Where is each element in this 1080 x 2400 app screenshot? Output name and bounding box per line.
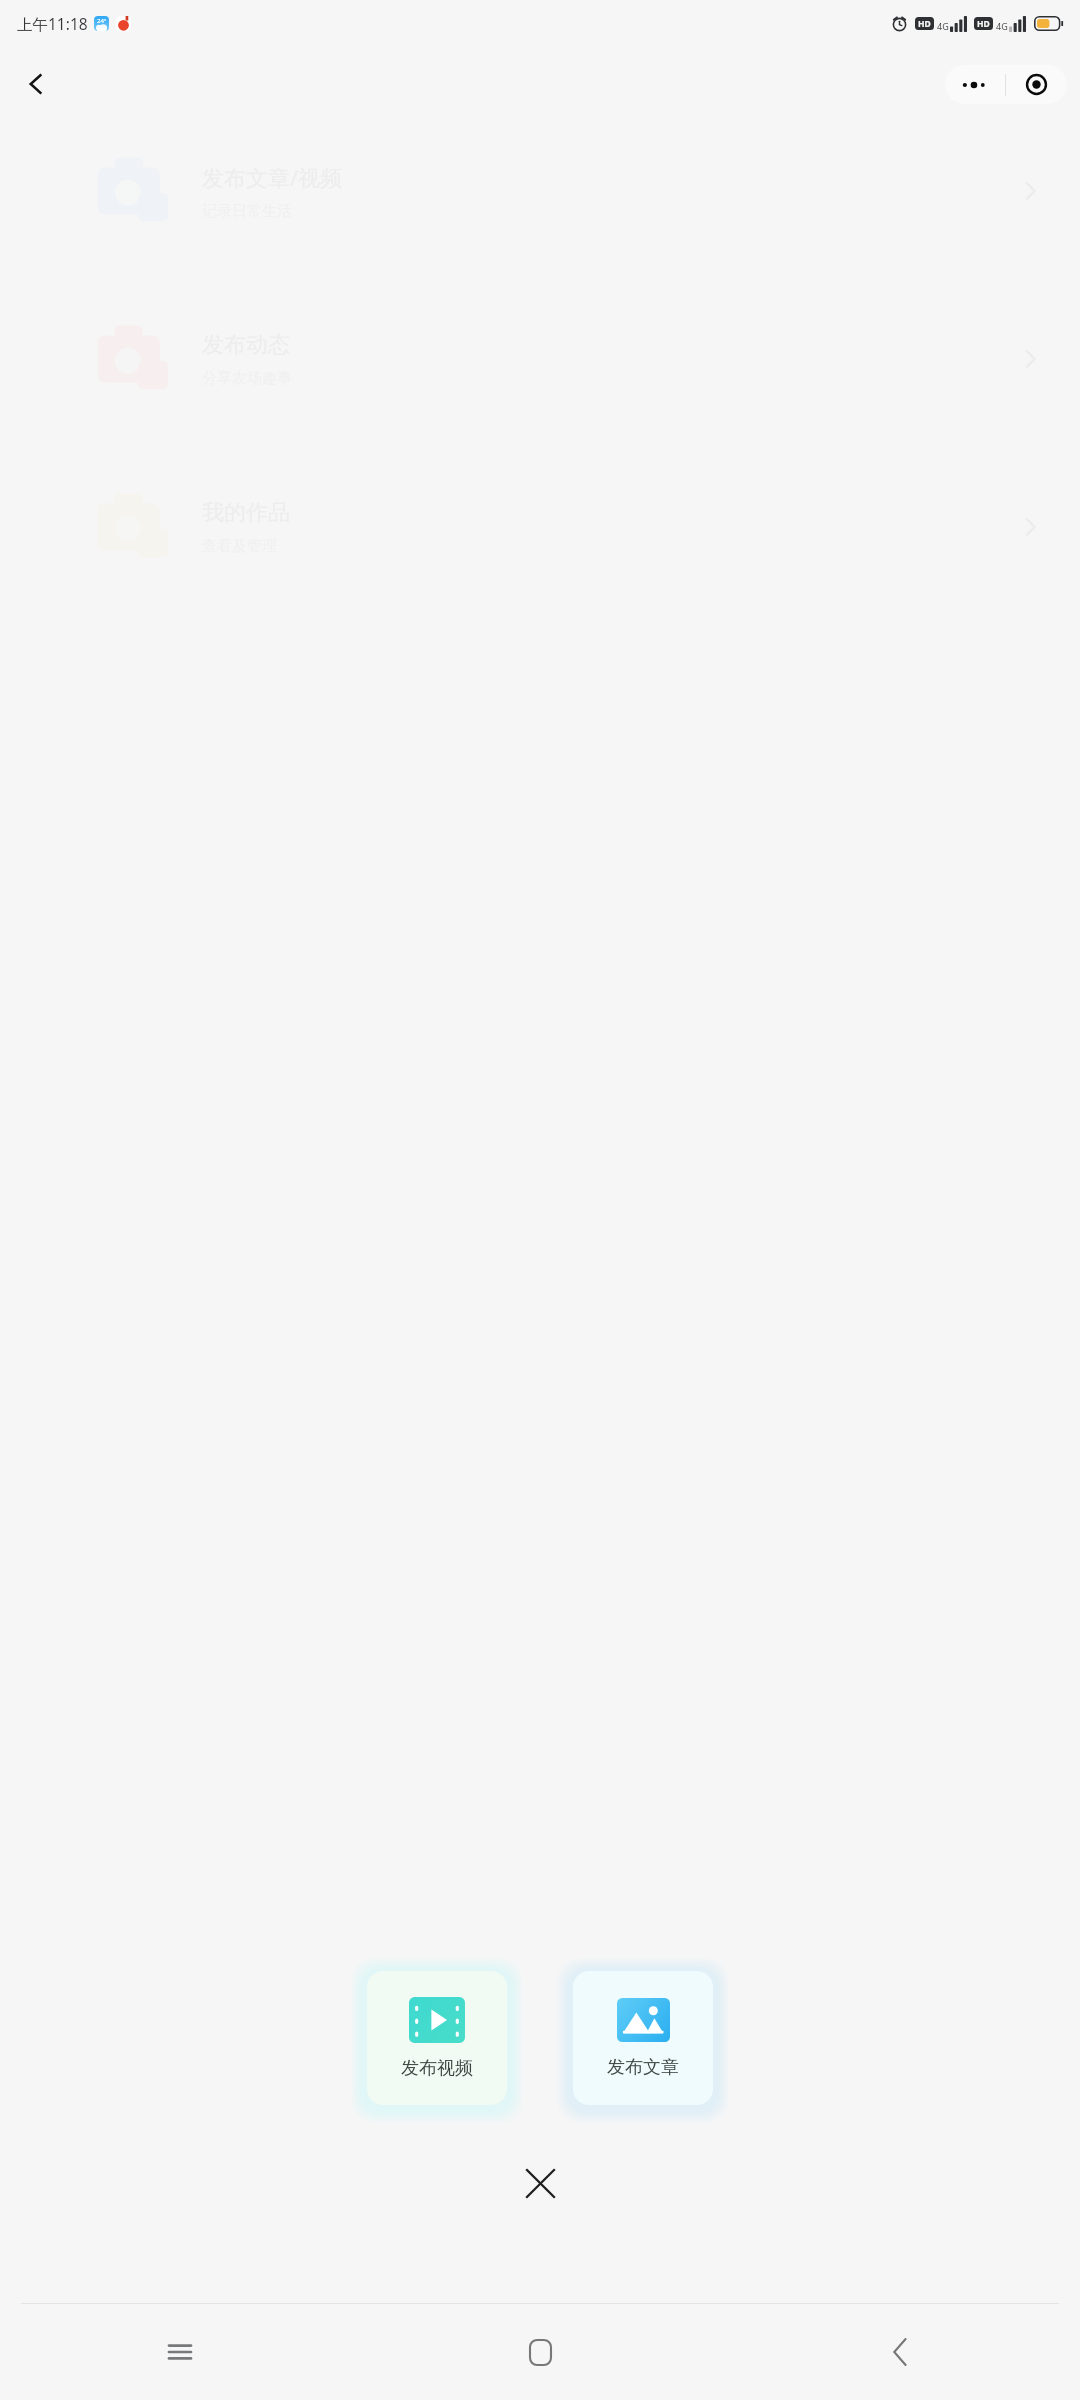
staticText: 发布视频 — [401, 2057, 473, 2080]
staticText: 24° — [97, 17, 107, 25]
staticText: 我的作品 — [202, 499, 290, 527]
staticText: 上午11:18 — [17, 13, 88, 34]
button[interactable]: Home — [360, 2304, 720, 2400]
button[interactable]: Back — [8, 56, 64, 112]
staticText: HD — [918, 18, 931, 30]
staticText: 发布动态 — [202, 331, 290, 359]
button[interactable]: 发布文章 — [573, 1971, 713, 2105]
button[interactable]: Back — [720, 2304, 1080, 2400]
staticText: 发布文章 — [607, 2056, 679, 2079]
button[interactable]: More — [945, 65, 1067, 104]
button[interactable]: 发布视频 — [367, 1971, 507, 2105]
staticText: HD — [977, 18, 990, 30]
staticText: 4G — [996, 20, 1008, 32]
staticText: 发布文章/视频 — [202, 162, 343, 192]
staticText: 4G — [937, 20, 949, 32]
button[interactable]: More — [945, 65, 1005, 104]
button[interactable]: Recents — [0, 2304, 360, 2400]
button[interactable]: Close — [506, 2149, 574, 2217]
button[interactable]: Close mini program — [1006, 65, 1067, 104]
